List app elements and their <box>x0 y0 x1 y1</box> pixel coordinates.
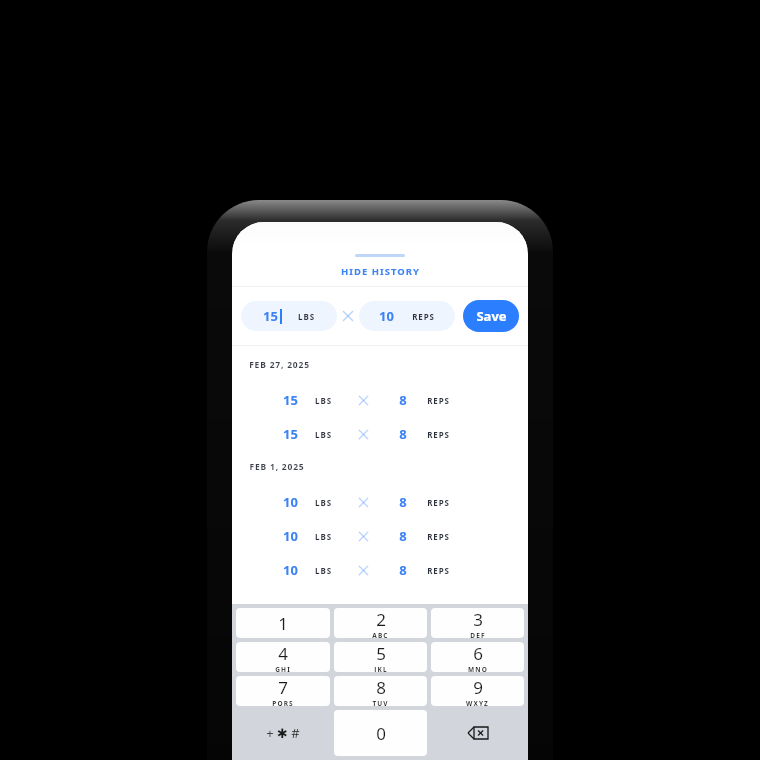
button[interactable]: 6 <box>431 642 524 672</box>
button[interactable]: 10 <box>232 519 528 553</box>
staticText: 9 <box>473 676 483 699</box>
staticText: LBS <box>315 531 332 542</box>
button[interactable]: 0 <box>334 710 427 756</box>
button[interactable]: 9 <box>431 676 524 706</box>
button[interactable]: 10 <box>232 485 528 519</box>
staticText: REPS <box>412 311 435 322</box>
staticText: REPS <box>427 395 450 406</box>
staticText: 10 <box>379 307 394 325</box>
staticText: LBS <box>315 565 332 576</box>
staticText: PQRS <box>272 699 294 706</box>
button[interactable]: 5 <box>334 642 427 672</box>
staticText: 8 <box>399 561 407 579</box>
staticText: 7 <box>278 676 288 699</box>
button[interactable]: Save <box>463 300 519 332</box>
staticText: GHI <box>275 665 291 672</box>
staticText: 15 <box>283 391 298 409</box>
staticText: MNO <box>468 665 488 672</box>
staticText: 0 <box>376 722 386 745</box>
button[interactable]: Symbols <box>236 710 330 756</box>
staticText: WXYZ <box>466 699 489 706</box>
staticText: LBS <box>315 429 332 440</box>
button[interactable]: HIDE HISTORY <box>232 265 528 278</box>
staticText: 5 <box>376 642 386 665</box>
staticText: 8 <box>399 425 407 443</box>
staticText: Save <box>476 307 507 325</box>
button[interactable]: 4 <box>236 642 330 672</box>
staticText: 8 <box>399 391 407 409</box>
staticText: + ✱ # <box>266 724 300 742</box>
staticText: 4 <box>278 642 288 665</box>
button[interactable]: 2 <box>334 608 427 638</box>
button[interactable]: 10 <box>359 301 455 331</box>
button[interactable]: 7 <box>236 676 330 706</box>
button[interactable]: 8 <box>334 676 427 706</box>
staticText: FEB 1, 2025 <box>249 461 305 473</box>
staticText: FEB 27, 2025 <box>249 359 310 371</box>
staticText: 6 <box>473 642 483 665</box>
staticText: 8 <box>399 493 407 511</box>
staticText: 8 <box>376 676 386 699</box>
button[interactable]: 3 <box>431 608 524 638</box>
staticText: 2 <box>376 608 386 631</box>
button[interactable]: Backspace <box>431 710 524 756</box>
staticText: LBS <box>298 311 315 322</box>
staticText: REPS <box>427 565 450 576</box>
staticText: 10 <box>283 561 298 579</box>
staticText: LBS <box>315 395 332 406</box>
staticText: REPS <box>427 531 450 542</box>
staticText: 15 <box>263 307 278 325</box>
staticText: LBS <box>315 497 332 508</box>
staticText: 8 <box>399 527 407 545</box>
staticText: JKL <box>374 665 388 672</box>
staticText: ABC <box>372 631 389 638</box>
button[interactable]: 15 <box>241 301 337 331</box>
staticText: 10 <box>283 527 298 545</box>
staticText: HIDE HISTORY <box>341 265 420 278</box>
staticText: TUV <box>372 699 389 706</box>
staticText: 10 <box>283 493 298 511</box>
button[interactable]: 1 <box>236 608 330 638</box>
button[interactable]: 10 <box>232 553 528 587</box>
staticText: REPS <box>427 497 450 508</box>
button[interactable]: 15 <box>232 417 528 451</box>
staticText: DEF <box>470 631 486 638</box>
staticText: 3 <box>473 608 483 631</box>
button[interactable]: 15 <box>232 383 528 417</box>
staticText: 1 <box>278 612 288 635</box>
staticText: 15 <box>283 425 298 443</box>
staticText: REPS <box>427 429 450 440</box>
